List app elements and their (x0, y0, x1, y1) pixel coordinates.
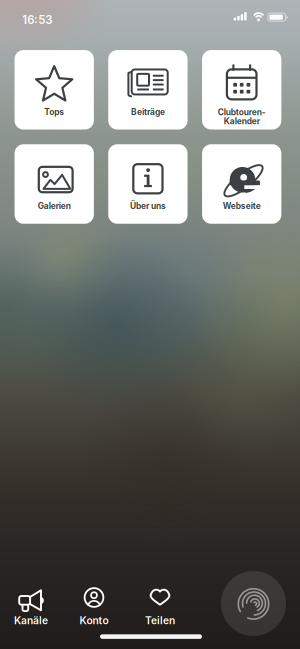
button[interactable]: Kanäle (0, 580, 62, 628)
button[interactable]: Clubtouren- (202, 50, 281, 129)
button[interactable]: Konto (63, 580, 125, 628)
button[interactable]: Teilen (129, 580, 191, 628)
staticText: 16:53 (22, 13, 52, 27)
button[interactable]: Webseite (202, 144, 281, 224)
staticText: Teilen (145, 614, 175, 627)
staticText: Kanäle (14, 614, 48, 627)
staticText: Beiträge (131, 107, 165, 117)
staticText: Galerien (38, 201, 71, 211)
button[interactable]: Über uns (108, 144, 187, 224)
button[interactable]: Beiträge (108, 50, 187, 129)
staticText: Konto (79, 614, 108, 627)
button[interactable]: Tops (15, 50, 94, 129)
staticText: Clubtouren- (218, 107, 266, 117)
staticText: Webseite (223, 201, 261, 211)
button[interactable]: Fingerabdruck (221, 571, 286, 636)
staticText: Tops (44, 107, 64, 117)
button[interactable]: Galerien (15, 144, 94, 224)
staticText: Über uns (130, 201, 166, 211)
staticText: Kalender (224, 116, 260, 126)
